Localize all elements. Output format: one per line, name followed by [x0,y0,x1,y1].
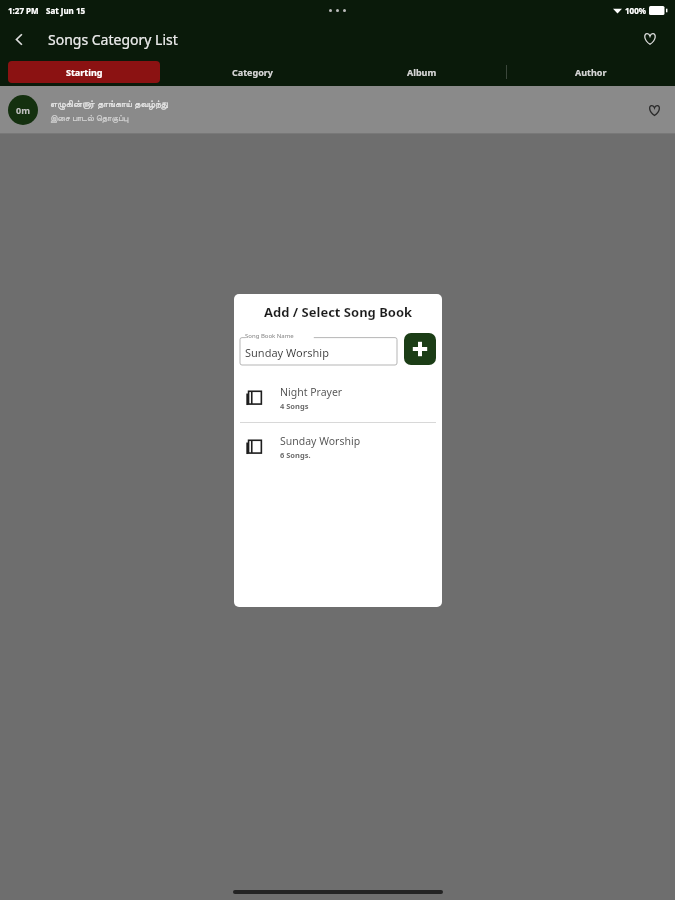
button[interactable]: Night Prayer [234,374,442,422]
staticText: Starting [66,66,103,78]
button[interactable]: Sunday Worship [234,423,442,471]
button[interactable]: Song Book Name [240,332,397,365]
staticText: 0m [16,104,30,116]
button[interactable]: Favorite [637,26,663,52]
staticText: Songs Category List [48,30,178,49]
button[interactable]: Back [0,20,38,58]
staticText: Song Book Name [245,332,294,340]
staticText: 6 Songs. [280,450,311,460]
staticText: Category [232,66,273,78]
button[interactable]: Favorite song [641,97,667,123]
staticText: இசை பாடல் தொகுப்பு [50,112,129,124]
staticText: Author [575,66,607,78]
staticText: Sunday Worship [245,345,329,360]
staticText: எழுகின்றார் தாங்காய் தவழ்ந்து [50,97,169,110]
staticText: Sat Jun 15 [46,5,86,16]
staticText: 1:27 PM [8,5,39,16]
staticText: 100% [625,5,646,16]
button[interactable]: Add song book [404,333,436,365]
staticText: 4 Songs [280,401,309,411]
button[interactable]: 0m [0,86,675,134]
staticText: Add / Select Song Book [264,303,413,321]
button[interactable]: Category [176,61,329,83]
button[interactable]: Author [514,61,667,83]
staticText: Sunday Worship [280,434,361,448]
staticText: Night Prayer [280,385,343,399]
button[interactable]: Starting [8,61,160,83]
button[interactable]: Album [345,61,498,83]
staticText: Album [407,66,437,78]
